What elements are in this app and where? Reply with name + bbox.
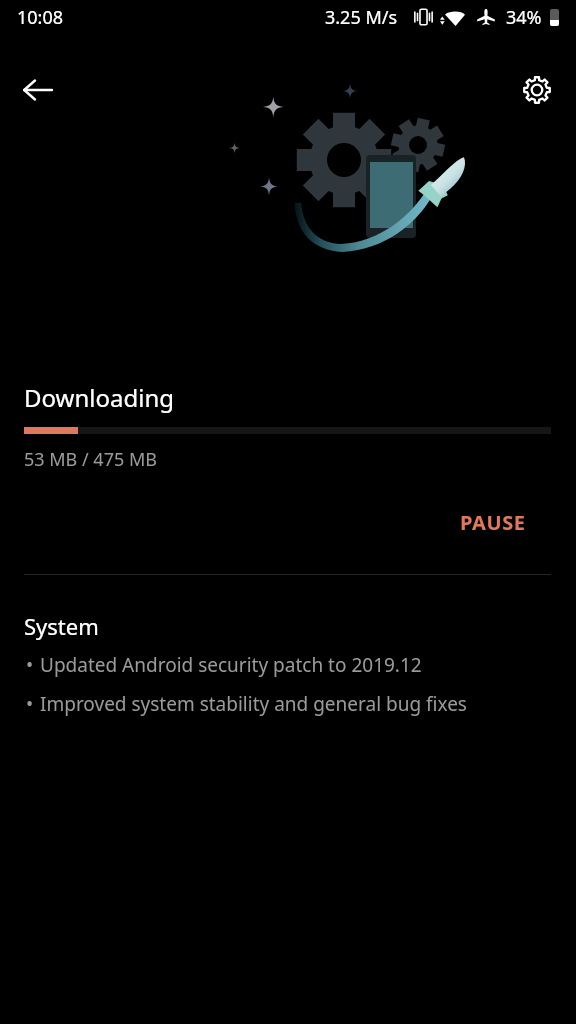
staticText: System (24, 611, 99, 641)
staticText: • (26, 691, 34, 717)
staticText: Downloading (24, 381, 174, 414)
staticText: 34% (506, 5, 542, 30)
staticText: Improved system stability and general bu… (40, 691, 467, 717)
staticText: PAUSE (460, 509, 526, 536)
button[interactable]: Settings (513, 66, 561, 114)
staticText: 3.25 M/s (325, 5, 398, 30)
staticText: • (26, 652, 34, 678)
staticText: 53 MB / 475 MB (24, 447, 157, 472)
button[interactable]: Back (14, 66, 62, 114)
button[interactable]: PAUSE (444, 499, 542, 546)
staticText: Updated Android security patch to 2019.1… (40, 652, 422, 678)
staticText: 10:08 (17, 5, 64, 30)
